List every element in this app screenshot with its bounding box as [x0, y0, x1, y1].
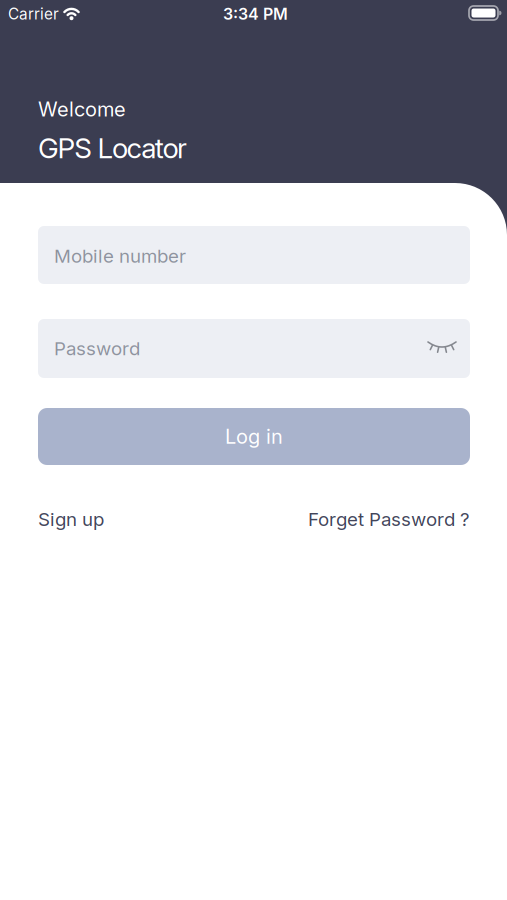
staticText: 3:34 PM [223, 4, 288, 24]
staticText: Welcome [38, 97, 126, 121]
button[interactable]: Log in [38, 408, 470, 465]
button[interactable]: Forget Password ? [308, 508, 470, 531]
staticText: Carrier [8, 5, 59, 23]
staticText: Sign up [38, 508, 104, 531]
button[interactable]: Mobile number [38, 226, 470, 284]
staticText: Forget Password ? [308, 508, 470, 531]
staticText: Mobile number [54, 245, 186, 267]
staticText: GPS Locator [38, 131, 187, 165]
button[interactable]: Show password [420, 328, 464, 368]
button[interactable]: Password [38, 319, 470, 378]
staticText: Password [54, 337, 140, 360]
button[interactable]: Sign up [38, 508, 104, 531]
staticText: Log in [225, 424, 283, 449]
